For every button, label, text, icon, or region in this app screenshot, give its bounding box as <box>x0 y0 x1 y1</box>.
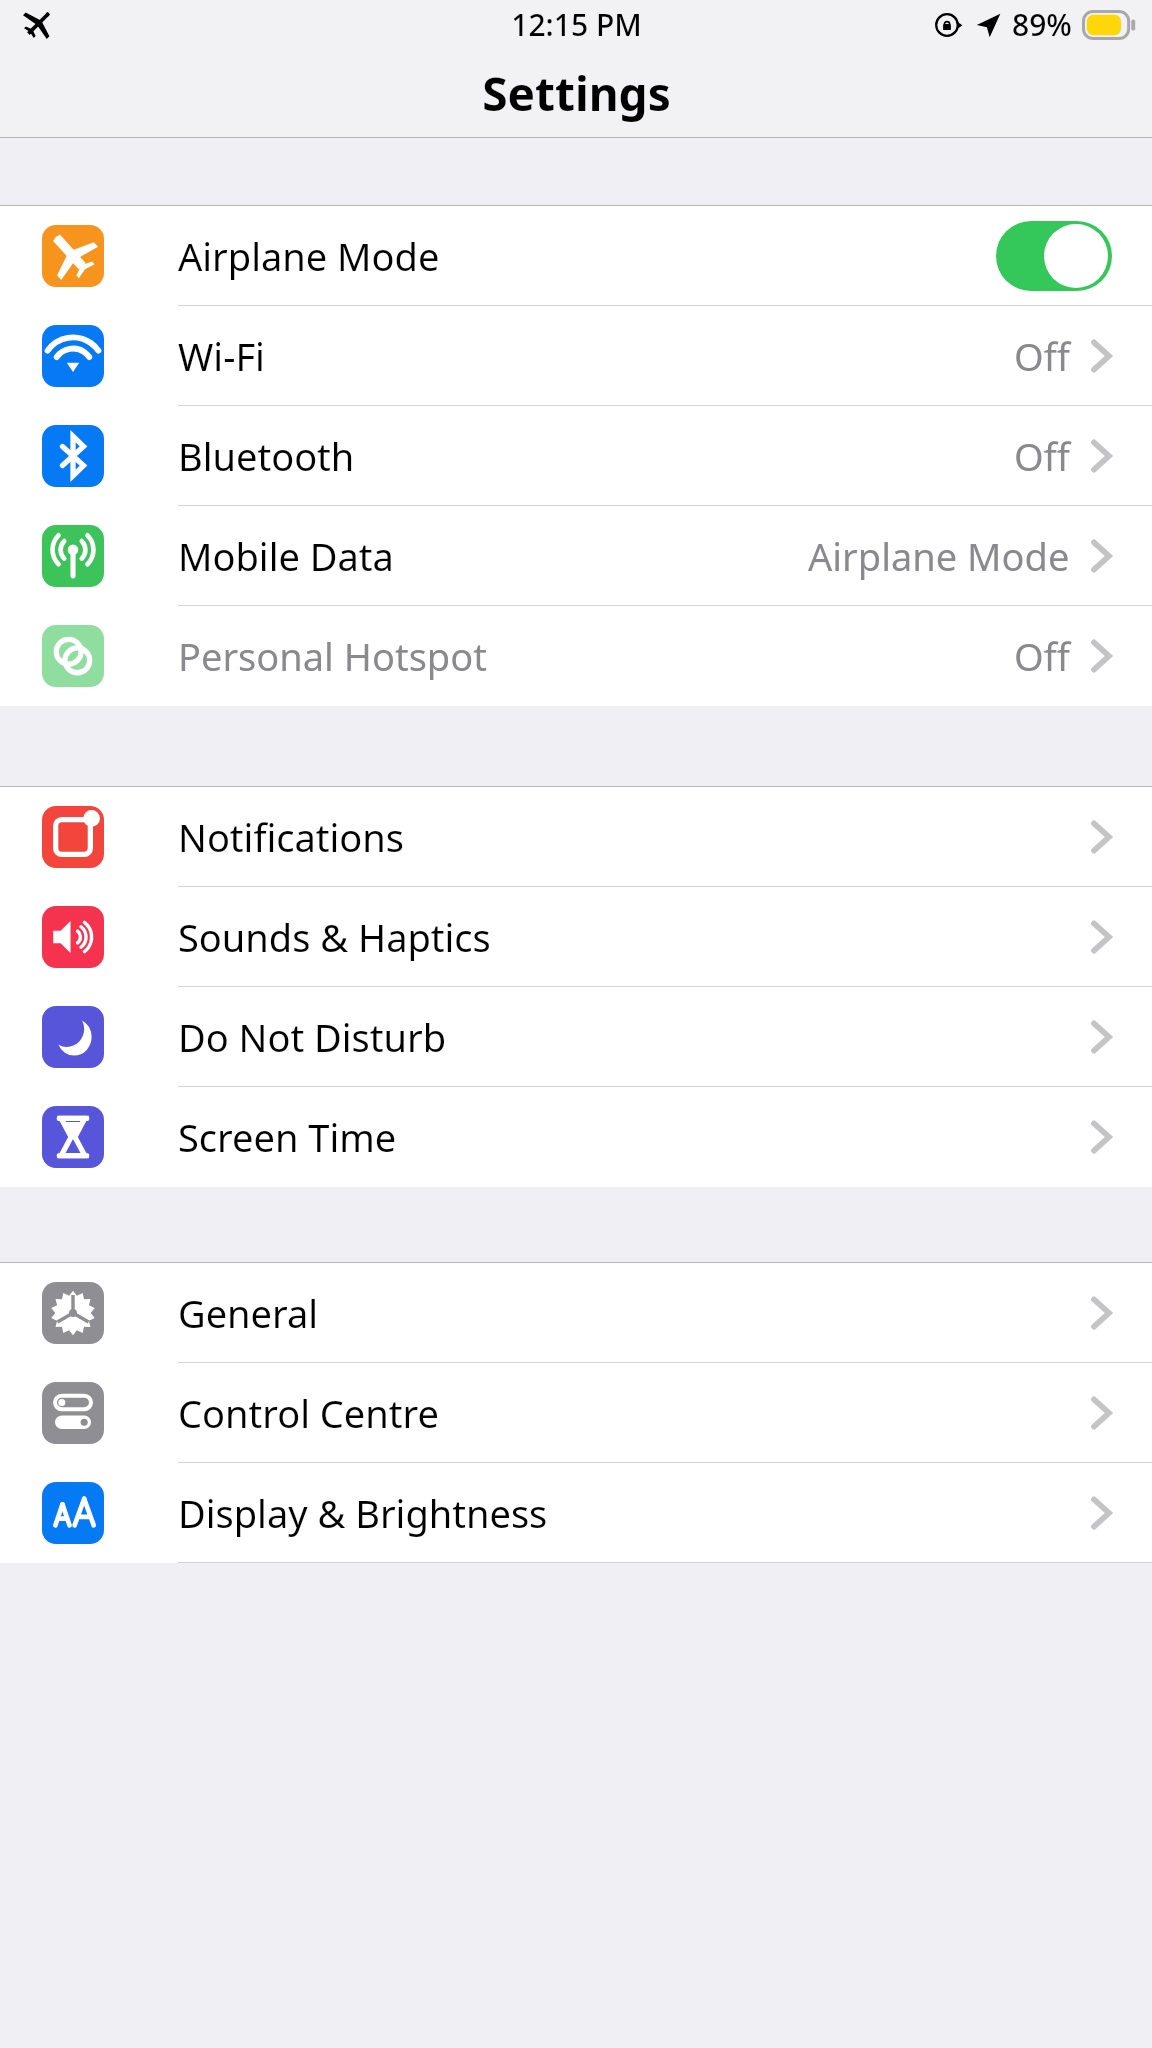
button[interactable]: Personal Hotspot <box>0 606 1152 706</box>
staticText: Control Centre <box>178 1387 439 1439</box>
button[interactable]: Mobile Data <box>0 506 1152 606</box>
staticText: Airplane Mode <box>178 230 440 282</box>
staticText: Off <box>1014 330 1070 382</box>
staticText: Display & Brightness <box>178 1487 548 1539</box>
staticText: General <box>178 1287 319 1339</box>
staticText: Mobile Data <box>178 530 394 582</box>
staticText: Wi-Fi <box>178 330 265 382</box>
button[interactable]: Display & Brightness <box>0 1463 1152 1563</box>
staticText: Off <box>1014 430 1070 482</box>
staticText: 12:15 PM <box>511 4 642 45</box>
button[interactable]: Screen Time <box>0 1087 1152 1187</box>
staticText: Notifications <box>178 811 405 863</box>
staticText: Sounds & Haptics <box>178 911 491 963</box>
staticText: Settings <box>482 62 671 125</box>
button[interactable]: Do Not Disturb <box>0 987 1152 1087</box>
staticText: Screen Time <box>178 1111 397 1163</box>
button[interactable]: Notifications <box>0 787 1152 887</box>
staticText: Do Not Disturb <box>178 1011 447 1063</box>
staticText: Off <box>1014 630 1070 682</box>
button[interactable]: Airplane Mode toggle <box>996 221 1112 291</box>
staticText: 89% <box>1012 4 1072 45</box>
button[interactable]: Airplane Mode <box>0 206 1152 306</box>
button[interactable]: Sounds & Haptics <box>0 887 1152 987</box>
button[interactable]: General <box>0 1263 1152 1363</box>
button[interactable]: Control Centre <box>0 1363 1152 1463</box>
button[interactable]: Wi-Fi <box>0 306 1152 406</box>
staticText: Airplane Mode <box>808 530 1070 582</box>
button[interactable]: Bluetooth <box>0 406 1152 506</box>
staticText: Personal Hotspot <box>178 630 487 682</box>
staticText: Bluetooth <box>178 430 355 482</box>
